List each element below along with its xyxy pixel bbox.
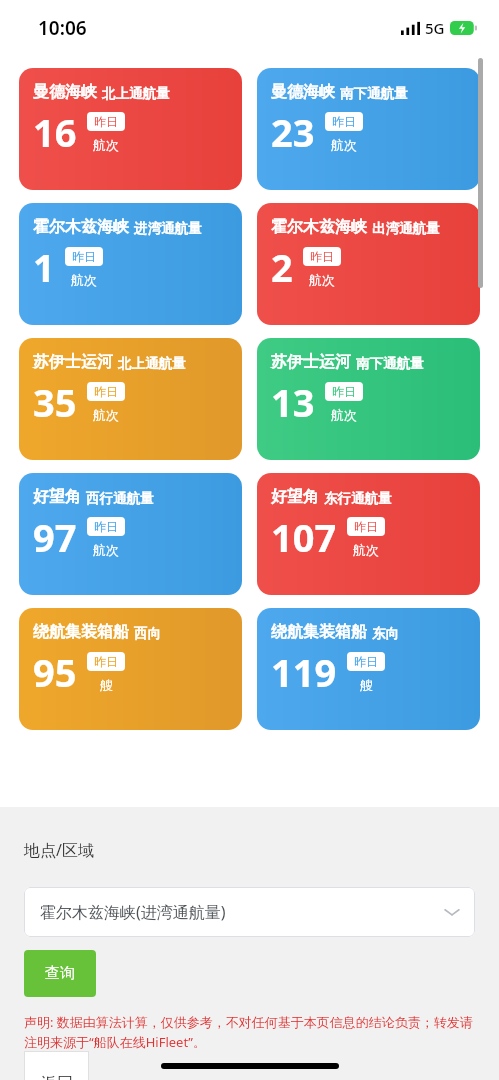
button[interactable]: 好望角 — [19, 473, 242, 595]
staticText: 绕航集装箱船 — [271, 622, 367, 642]
staticText: 航次 — [71, 272, 97, 288]
staticText: 昨日 — [332, 114, 356, 129]
staticText: 曼德海峡 — [33, 82, 97, 102]
button[interactable]: 曼德海峡 — [257, 68, 480, 190]
staticText: 昨日 — [94, 654, 118, 669]
staticText: 航次 — [331, 407, 357, 423]
staticText: 西向 — [134, 625, 161, 642]
staticText: 5G — [425, 18, 445, 38]
staticText: 北上通航量 — [118, 355, 186, 372]
staticText: 昨日 — [94, 384, 118, 399]
button[interactable]: 苏伊士运河 — [19, 338, 242, 460]
staticText: 97 — [33, 511, 77, 563]
button[interactable]: 霍尔木兹海峡 — [257, 203, 480, 325]
staticText: 进湾通航量 — [134, 220, 202, 237]
staticText: 南下通航量 — [340, 85, 408, 102]
staticText: 昨日 — [354, 519, 378, 534]
staticText: 航次 — [309, 272, 335, 288]
button[interactable]: 霍尔木兹海峡 — [19, 203, 242, 325]
staticText: 曼德海峡 — [271, 82, 335, 102]
button[interactable]: 霍尔木兹海峡(进湾通航量) — [24, 887, 475, 937]
staticText: 艘 — [360, 677, 373, 693]
staticText: 昨日 — [94, 519, 118, 534]
staticText: 出湾通航量 — [372, 220, 440, 237]
staticText: 好望角 — [33, 487, 81, 507]
button[interactable]: 返回 — [24, 1051, 89, 1080]
staticText: 107 — [271, 511, 337, 563]
button[interactable]: 绕航集装箱船 — [19, 608, 242, 730]
staticText: 北上通航量 — [102, 85, 170, 102]
staticText: 13 — [271, 376, 315, 428]
staticText: 好望角 — [271, 487, 319, 507]
staticText: 2 — [271, 241, 293, 293]
staticText: 昨日 — [94, 114, 118, 129]
staticText: 23 — [271, 106, 315, 158]
staticText: 昨日 — [310, 249, 334, 264]
staticText: 绕航集装箱船 — [33, 622, 129, 642]
staticText: 昨日 — [354, 654, 378, 669]
staticText: 艘 — [100, 677, 113, 693]
staticText: 声明: 数据由算法计算，仅供参考，不对任何基于本页信息的结论负责；转发请注明来源… — [24, 1013, 475, 1051]
staticText: 航次 — [353, 542, 379, 558]
staticText: 西行通航量 — [86, 490, 154, 507]
staticText: 昨日 — [332, 384, 356, 399]
staticText: 昨日 — [72, 249, 96, 264]
staticText: 东行通航量 — [324, 490, 392, 507]
staticText: 东向 — [372, 625, 399, 642]
staticText: 1 — [33, 241, 55, 293]
staticText: 95 — [33, 646, 77, 698]
staticText: 霍尔木兹海峡 — [33, 217, 129, 237]
staticText: 16 — [33, 106, 77, 158]
staticText: 南下通航量 — [356, 355, 424, 372]
staticText: 航次 — [93, 407, 119, 423]
button[interactable]: 好望角 — [257, 473, 480, 595]
button[interactable]: 苏伊士运河 — [257, 338, 480, 460]
staticText: 霍尔木兹海峡 — [271, 217, 367, 237]
staticText: 119 — [271, 646, 337, 698]
staticText: 苏伊士运河 — [271, 352, 351, 372]
button[interactable]: 绕航集装箱船 — [257, 608, 480, 730]
staticText: 返回 — [41, 1074, 73, 1080]
staticText: 苏伊士运河 — [33, 352, 113, 372]
staticText: 查询 — [45, 964, 75, 983]
staticText: 航次 — [331, 137, 357, 153]
staticText: 地点/区域 — [24, 839, 94, 861]
button[interactable]: 查询 — [24, 950, 96, 997]
staticText: 霍尔木兹海峡(进湾通航量) — [40, 901, 445, 923]
button[interactable]: 曼德海峡 — [19, 68, 242, 190]
staticText: 35 — [33, 376, 77, 428]
staticText: 航次 — [93, 542, 119, 558]
staticText: 航次 — [93, 137, 119, 153]
staticText: 10:06 — [38, 15, 87, 41]
